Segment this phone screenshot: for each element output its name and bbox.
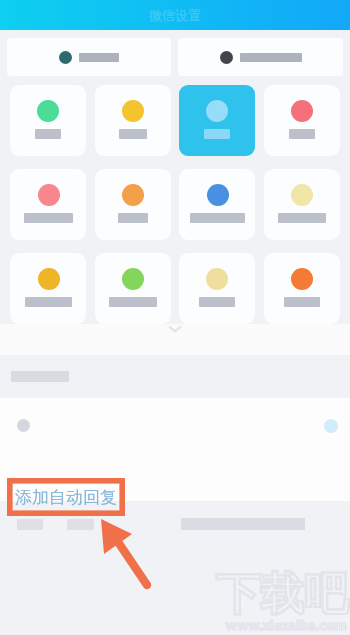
button[interactable]: Share 7	[179, 169, 255, 240]
staticText: 微信设置	[149, 7, 201, 23]
button[interactable]: Share 12	[264, 253, 340, 324]
button[interactable]: Select group	[178, 38, 343, 76]
button[interactable]: Share 6	[95, 169, 171, 240]
button[interactable]: Share 9	[10, 253, 86, 324]
button[interactable]: QQ	[179, 85, 255, 156]
button[interactable]: Share 11	[179, 253, 255, 324]
button[interactable]: Share 8	[264, 169, 340, 240]
button[interactable]: Select friend	[7, 38, 171, 76]
button[interactable]: Share 5	[10, 169, 86, 240]
staticText: www.xiazaiba.com	[226, 616, 347, 634]
button[interactable]: Weibo	[264, 85, 340, 156]
button[interactable]: Send	[324, 419, 338, 433]
staticText: 下载吧	[216, 567, 348, 622]
button[interactable]: Avatar	[17, 419, 30, 432]
button[interactable]: Share 10	[95, 253, 171, 324]
button[interactable]: WeChat	[10, 85, 86, 156]
button[interactable]: Moments	[95, 85, 171, 156]
staticText: 添加自动回复	[15, 487, 117, 508]
